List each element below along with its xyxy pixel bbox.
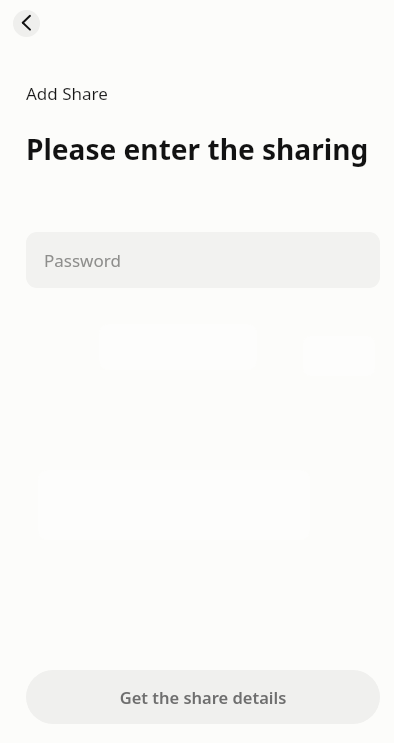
staticText: Please enter the sharing	[26, 130, 369, 168]
staticText: Password	[44, 249, 121, 272]
staticText: Add Share	[26, 82, 108, 105]
button[interactable]: Get the share details	[26, 670, 380, 724]
button[interactable]: Back	[13, 10, 40, 37]
staticText: Get the share details	[26, 686, 380, 708]
button[interactable]: Password	[26, 232, 380, 288]
